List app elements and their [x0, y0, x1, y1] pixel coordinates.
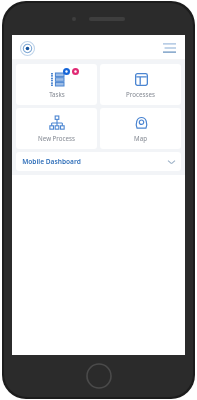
button[interactable]: Menu [159, 38, 179, 58]
staticText: Processes [126, 90, 155, 98]
button[interactable]: Processes [100, 64, 181, 105]
button[interactable]: Tasks [16, 64, 97, 105]
button[interactable]: Mobile Dashboard [16, 152, 181, 171]
button[interactable]: Map [100, 108, 181, 149]
staticText: Tasks [49, 90, 65, 98]
staticText: Map [134, 134, 147, 142]
button[interactable]: New Process [16, 108, 97, 149]
staticText: New Process [38, 134, 75, 142]
staticText: Mobile Dashboard [22, 157, 81, 166]
button[interactable]: App logo [17, 38, 37, 58]
